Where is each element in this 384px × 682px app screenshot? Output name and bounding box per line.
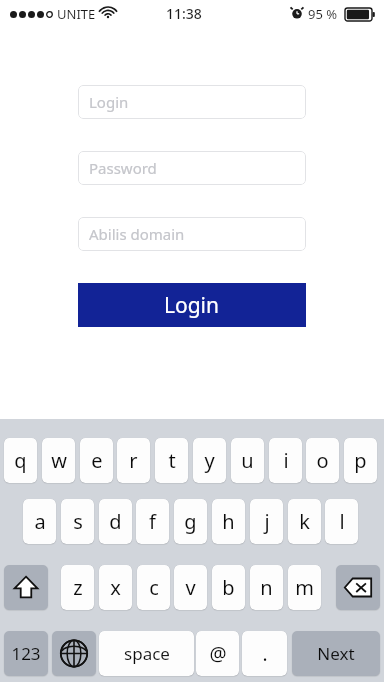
button[interactable]: h — [212, 499, 245, 544]
button[interactable]: l — [325, 499, 358, 544]
button[interactable]: v — [174, 565, 207, 610]
button[interactable]: Password — [78, 151, 306, 185]
staticText: . — [262, 641, 268, 667]
staticText: o — [316, 447, 329, 474]
staticText: m — [295, 574, 314, 601]
staticText: d — [109, 508, 122, 535]
staticText: f — [149, 508, 156, 535]
button[interactable]: j — [250, 499, 283, 544]
button[interactable]: y — [193, 438, 226, 483]
staticText: b — [222, 574, 235, 601]
staticText: q — [14, 447, 27, 474]
staticText: 11:38 — [166, 4, 202, 23]
button[interactable]: d — [99, 499, 132, 544]
button[interactable]: n — [250, 565, 283, 610]
staticText: l — [339, 508, 345, 535]
staticText: s — [73, 508, 83, 535]
button[interactable]: Change keyboard — [52, 631, 96, 676]
button[interactable]: f — [136, 499, 169, 544]
staticText: y — [204, 447, 215, 474]
staticText: x — [110, 574, 121, 601]
staticText: Login — [89, 92, 129, 112]
staticText: j — [264, 508, 270, 535]
button[interactable]: b — [212, 565, 245, 610]
staticText: Password — [89, 158, 157, 178]
button[interactable]: s — [61, 499, 94, 544]
button[interactable]: z — [61, 565, 94, 610]
button[interactable]: g — [174, 499, 207, 544]
staticText: Login — [164, 291, 220, 320]
staticText: Next — [317, 642, 355, 665]
staticText: c — [149, 574, 159, 601]
staticText: Abilis domain — [89, 224, 185, 244]
staticText: @ — [209, 641, 227, 667]
staticText: u — [241, 447, 254, 474]
staticText: UNITE — [57, 5, 96, 23]
button[interactable]: space — [99, 631, 194, 676]
button[interactable]: o — [306, 438, 339, 483]
staticText: w — [51, 447, 67, 474]
button[interactable]: k — [288, 499, 321, 544]
staticText: z — [73, 574, 83, 601]
button[interactable]: c — [137, 565, 170, 610]
button[interactable]: Login — [78, 85, 306, 119]
button[interactable]: p — [344, 438, 377, 483]
staticText: k — [299, 508, 310, 535]
staticText: r — [129, 447, 138, 474]
staticText: v — [185, 574, 196, 601]
staticText: p — [354, 447, 367, 474]
button[interactable]: w — [42, 438, 75, 483]
button[interactable]: Login — [78, 283, 306, 327]
staticText: i — [283, 447, 289, 474]
button[interactable]: Shift — [4, 565, 48, 610]
button[interactable]: u — [231, 438, 264, 483]
staticText: 95 % — [308, 5, 338, 23]
button[interactable]: 123 — [4, 631, 48, 676]
staticText: t — [168, 447, 176, 474]
button[interactable]: e — [80, 438, 113, 483]
staticText: space — [124, 642, 170, 665]
staticText: e — [91, 447, 103, 474]
button[interactable]: i — [269, 438, 302, 483]
staticText: a — [34, 508, 46, 535]
button[interactable]: t — [155, 438, 188, 483]
staticText: h — [222, 508, 235, 535]
button[interactable]: . — [242, 631, 287, 676]
button[interactable]: Abilis domain — [78, 217, 306, 251]
button[interactable]: @ — [196, 631, 239, 676]
button[interactable]: a — [23, 499, 56, 544]
button[interactable]: Backspace — [336, 565, 380, 610]
button[interactable]: x — [99, 565, 132, 610]
button[interactable]: Next — [292, 631, 380, 676]
button[interactable]: m — [288, 565, 321, 610]
button[interactable]: r — [117, 438, 150, 483]
staticText: g — [184, 508, 197, 535]
staticText: 123 — [11, 642, 41, 665]
button[interactable]: q — [4, 438, 37, 483]
staticText: n — [260, 574, 273, 601]
